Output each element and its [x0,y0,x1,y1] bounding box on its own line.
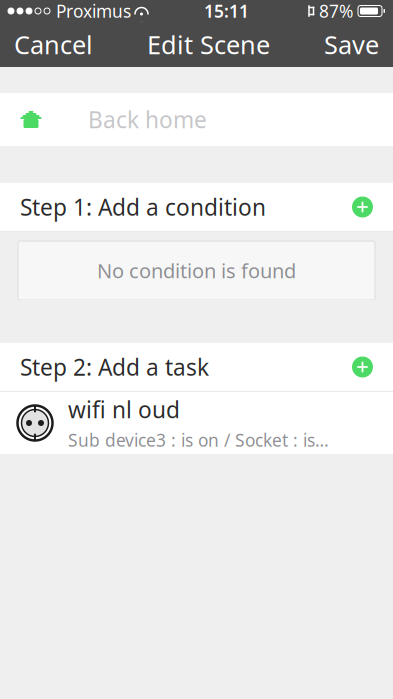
staticText: 87% [319,0,353,22]
staticText: Sub device3 : is on / Socket : is… [68,428,329,451]
staticText: Back home [88,104,207,134]
button[interactable]: Add [345,189,380,224]
button[interactable]: Cancel [0,17,107,72]
staticText: Proximus [56,0,131,22]
button[interactable]: Back home [0,93,393,146]
staticText: Step 2: Add a task [20,352,209,382]
button[interactable]: Add [345,349,380,384]
staticText: No condition is found [97,257,296,284]
staticText: 15:11 [204,0,249,22]
staticText: Step 1: Add a condition [20,192,266,222]
staticText: wifi nl oud [68,394,180,424]
button[interactable]: Save [310,17,393,72]
staticText: Edit Scene [147,28,270,61]
staticText: Save [324,28,379,61]
staticText: Cancel [14,28,93,61]
button[interactable]: wifi nl oud [0,392,393,454]
